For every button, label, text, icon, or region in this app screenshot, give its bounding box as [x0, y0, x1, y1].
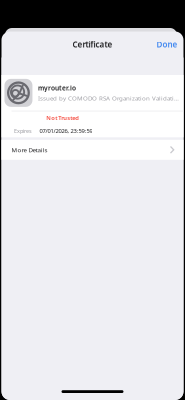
staticText: More Details	[11, 146, 47, 154]
staticText: Done	[156, 39, 177, 50]
staticText: Issued by COMODO RSA Organization Valida…	[38, 94, 179, 102]
staticText: 07/01/2026, 23:59:59	[39, 127, 92, 135]
button[interactable]: Done	[148, 34, 183, 55]
staticText: myrouter.io	[38, 83, 76, 92]
button[interactable]: More Details	[1, 140, 183, 160]
staticText: Expires	[14, 127, 32, 134]
staticText: Not Trusted	[46, 114, 79, 122]
staticText: Certificate	[72, 39, 112, 50]
